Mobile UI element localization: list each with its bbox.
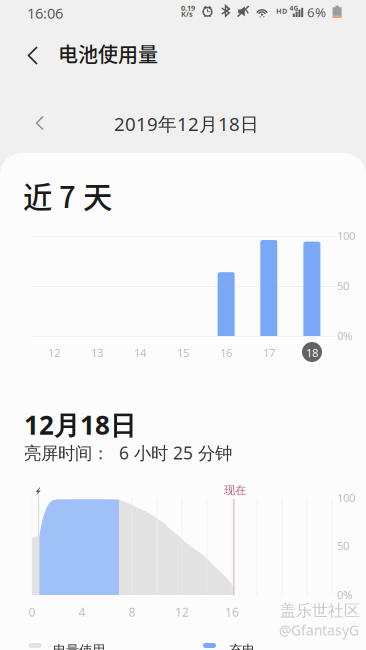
staticText: HD — [276, 6, 287, 16]
staticText: 14 — [134, 345, 146, 360]
staticText: K/s — [181, 9, 193, 19]
staticText: 现在 — [224, 483, 246, 497]
staticText: 盖乐世社区 — [280, 600, 360, 621]
staticText: 12 — [48, 345, 60, 360]
staticText: 18 — [306, 345, 318, 360]
staticText: 15 — [177, 345, 189, 360]
staticText: 0% — [337, 587, 352, 602]
staticText: 充电 — [229, 642, 255, 650]
staticText: 0 — [28, 604, 35, 620]
staticText: 近 7 天 — [23, 174, 112, 216]
button[interactable]: Back — [0, 0, 366, 650]
staticText: 8 — [128, 604, 135, 620]
staticText: 16 — [225, 604, 239, 620]
staticText: 100 — [337, 490, 355, 505]
staticText: 12 — [175, 604, 189, 620]
staticText: 12月18日 — [24, 407, 136, 442]
staticText: 100 — [337, 228, 355, 243]
staticText: 50 — [337, 538, 349, 553]
staticText: 50 — [337, 278, 349, 293]
staticText: 16:06 — [27, 3, 63, 23]
staticText: 0% — [337, 328, 352, 343]
staticText: @GfantasyG — [279, 621, 359, 639]
staticText: 4 — [78, 604, 85, 620]
staticText: 13 — [91, 345, 103, 360]
staticText: 电量使用 — [53, 642, 105, 650]
staticText: 2019年12月18日 — [114, 111, 259, 136]
staticText: 电池使用量 — [58, 39, 158, 68]
button[interactable]: Previous day — [0, 0, 366, 650]
staticText: 6% — [307, 3, 326, 21]
staticText: 亮屏时间： 6 小时 25 分钟 — [24, 441, 232, 465]
staticText: 17 — [263, 345, 275, 360]
staticText: 0.19 — [181, 3, 195, 13]
staticText: 4G — [289, 3, 298, 13]
staticText: 16 — [220, 345, 232, 360]
